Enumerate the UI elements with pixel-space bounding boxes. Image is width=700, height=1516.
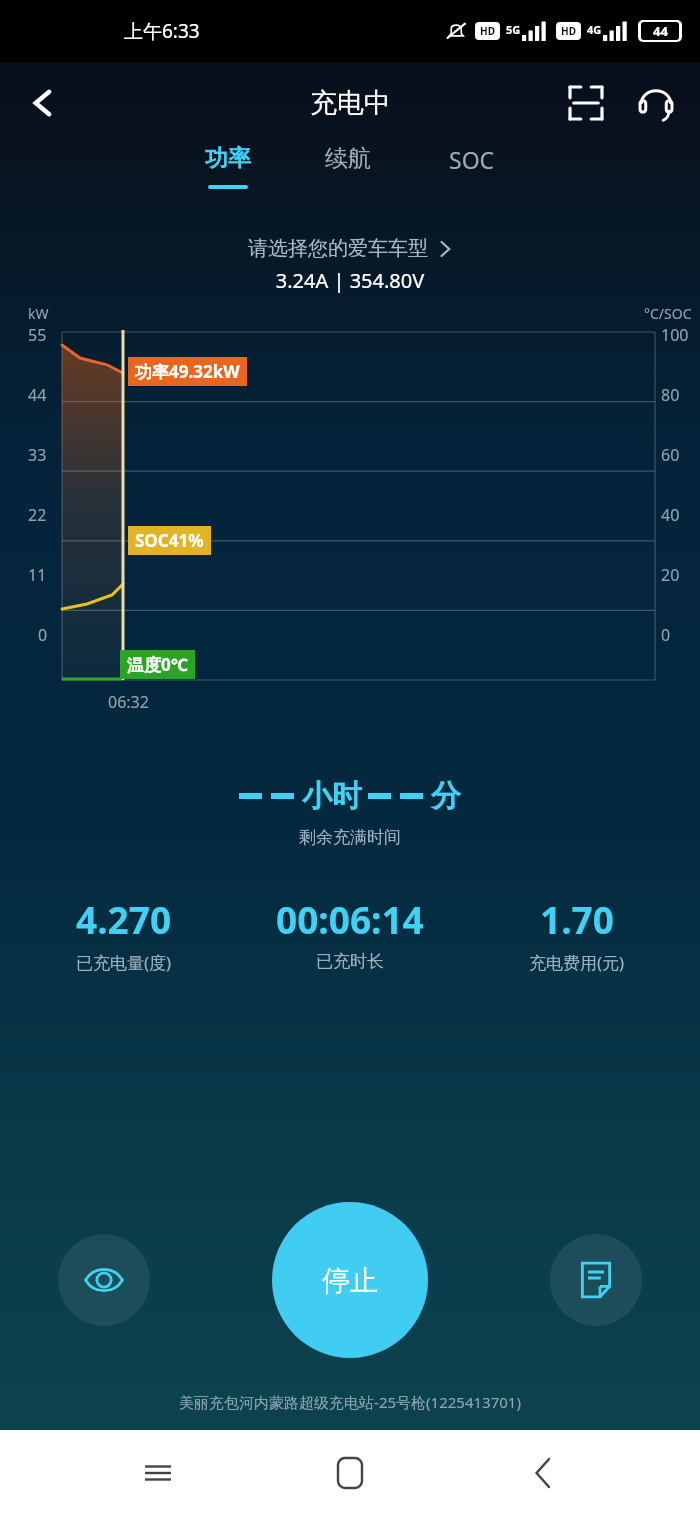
staticText: °C/SOC <box>644 304 692 323</box>
button[interactable]: 功率 <box>205 144 251 189</box>
button[interactable]: Back <box>508 1438 578 1508</box>
staticText: 已充时长 <box>316 951 384 972</box>
button[interactable]: Notes <box>550 1234 642 1326</box>
staticText: SOC41% <box>135 529 204 552</box>
staticText: HD <box>480 24 495 38</box>
button[interactable]: Home <box>315 1438 385 1508</box>
staticText: 55 <box>28 324 47 346</box>
staticText: 1.70 <box>540 894 614 944</box>
staticText: 功率 <box>205 144 251 173</box>
button[interactable]: Details <box>58 1234 150 1326</box>
button[interactable]: 续航 <box>325 144 371 173</box>
button[interactable]: 请选择您的爱车车型 <box>0 236 700 261</box>
staticText: 40 <box>661 504 680 526</box>
staticText: 上午6:33 <box>124 18 200 44</box>
staticText: 充电中 <box>310 86 391 120</box>
staticText: 4G <box>587 22 602 37</box>
staticText: 33 <box>28 444 47 466</box>
staticText: 小时 <box>302 777 362 815</box>
button[interactable]: Support <box>628 75 684 131</box>
staticText: 请选择您的爱车车型 <box>248 236 428 261</box>
staticText: 80 <box>661 384 680 406</box>
staticText: 3.24A | 354.80V <box>0 267 700 294</box>
staticText: 美丽充包河内蒙路超级充电站-25号枪(1225413701) <box>0 1392 700 1412</box>
staticText: 4.270 <box>76 894 172 944</box>
staticText: 60 <box>661 444 680 466</box>
staticText: 充电费用(元) <box>529 951 625 974</box>
staticText: 功率49.32kW <box>135 360 240 383</box>
staticText: 分 <box>431 777 461 815</box>
button[interactable]: SOC <box>449 144 495 175</box>
staticText: 5G <box>506 22 521 37</box>
staticText: 剩余充满时间 <box>299 827 401 848</box>
staticText: HD <box>561 24 576 38</box>
button[interactable]: Back <box>14 74 72 132</box>
staticText: kW <box>28 304 49 323</box>
staticText: 温度0℃ <box>127 653 188 676</box>
staticText: 06:32 <box>108 691 149 713</box>
staticText: 0 <box>661 624 671 646</box>
staticText: 11 <box>28 564 47 586</box>
button[interactable]: Recents <box>123 1438 193 1508</box>
staticText: 已充电量(度) <box>76 951 172 974</box>
staticText: 44 <box>653 22 668 40</box>
staticText: 停止 <box>322 1263 378 1298</box>
button[interactable]: Scan <box>558 75 614 131</box>
staticText: 44 <box>28 384 47 406</box>
staticText: 00:06:14 <box>276 894 424 944</box>
staticText: 22 <box>28 504 47 526</box>
staticText: 0 <box>38 624 48 646</box>
staticText: 20 <box>661 564 680 586</box>
button[interactable]: 停止 <box>272 1202 428 1358</box>
staticText: 100 <box>661 324 689 346</box>
